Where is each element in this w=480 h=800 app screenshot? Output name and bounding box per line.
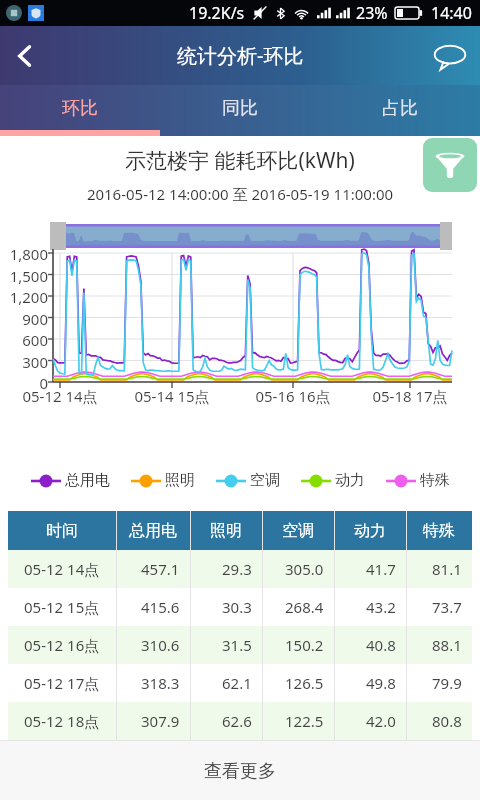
staticText: 80.8 [432, 711, 462, 731]
staticText: 1,200 [0, 287, 48, 307]
staticText: 300 [0, 352, 48, 372]
staticText: 特殊 [423, 521, 455, 541]
staticText: 特殊 [420, 471, 450, 490]
staticText: 占比 [382, 97, 418, 120]
staticText: 05-12 17点 [24, 673, 100, 693]
button[interactable]: 05-12 18点 [8, 702, 472, 740]
staticText: 29.3 [222, 559, 252, 579]
staticText: 0 [0, 373, 48, 393]
button[interactable]: Filter [423, 138, 477, 192]
staticText: 310.6 [141, 635, 180, 655]
staticText: 示范楼宇 能耗环比(kWh) [0, 146, 480, 175]
staticText: 307.9 [141, 711, 180, 731]
staticText: 268.4 [285, 597, 324, 617]
staticText: 动力 [354, 521, 386, 541]
staticText: 查看更多 [204, 760, 276, 783]
button[interactable]: 占比 [320, 85, 480, 136]
staticText: 同比 [222, 97, 258, 120]
staticText: 62.1 [222, 673, 252, 693]
staticText: 05-12 18点 [24, 711, 100, 731]
staticText: 总用电 [129, 521, 177, 541]
button[interactable]: 05-12 17点 [8, 664, 472, 702]
staticText: 122.5 [285, 711, 324, 731]
staticText: 40.8 [366, 635, 396, 655]
staticText: 30.3 [222, 597, 252, 617]
staticText: 62.6 [222, 711, 252, 731]
button[interactable]: 05-12 14点 [8, 550, 472, 588]
staticText: 600 [0, 330, 48, 350]
staticText: 79.9 [432, 673, 462, 693]
button[interactable]: Back [0, 26, 50, 85]
staticText: 05-16 16点 [248, 386, 338, 406]
staticText: 73.7 [432, 597, 462, 617]
staticText: 照明 [210, 521, 242, 541]
staticText: 126.5 [285, 673, 324, 693]
staticText: 41.7 [366, 559, 396, 579]
staticText: 总用电 [65, 471, 110, 490]
staticText: 照明 [165, 471, 195, 490]
staticText: 统计分析-环比 [177, 42, 304, 69]
button[interactable]: 05-12 15点 [8, 588, 472, 626]
staticText: 05-14 15点 [127, 386, 217, 406]
staticText: 305.0 [285, 559, 324, 579]
button[interactable]: Message [420, 26, 480, 85]
staticText: 42.0 [366, 711, 396, 731]
staticText: 05-12 14点 [15, 386, 105, 406]
staticText: 空调 [250, 471, 280, 490]
staticText: 43.2 [366, 597, 396, 617]
staticText: 时间 [46, 521, 78, 541]
staticText: 31.5 [222, 635, 252, 655]
staticText: 空调 [282, 521, 314, 541]
staticText: 88.1 [432, 635, 462, 655]
staticText: 1,500 [0, 266, 48, 286]
staticText: 05-12 14点 [24, 559, 100, 579]
staticText: 环比 [62, 97, 98, 120]
staticText: 05-12 16点 [24, 635, 100, 655]
staticText: 19.2K/s [189, 2, 245, 24]
staticText: 05-18 17点 [365, 386, 455, 406]
staticText: 1,800 [0, 244, 48, 264]
staticText: 81.1 [432, 559, 462, 579]
button[interactable]: 05-12 16点 [8, 626, 472, 664]
staticText: 49.8 [366, 673, 396, 693]
staticText: 动力 [335, 471, 365, 490]
staticText: 318.3 [141, 673, 180, 693]
button[interactable]: 同比 [160, 85, 320, 136]
staticText: 05-12 15点 [24, 597, 100, 617]
staticText: 457.1 [141, 559, 180, 579]
staticText: 150.2 [285, 635, 324, 655]
staticText: 2016-05-12 14:00:00 至 2016-05-19 11:00:0… [0, 184, 480, 204]
staticText: 415.6 [141, 597, 180, 617]
staticText: 900 [0, 309, 48, 329]
staticText: 23% [356, 2, 388, 24]
button[interactable]: 查看更多 [204, 760, 276, 783]
staticText: 14:40 [431, 2, 472, 24]
button[interactable]: 环比 [0, 85, 160, 136]
